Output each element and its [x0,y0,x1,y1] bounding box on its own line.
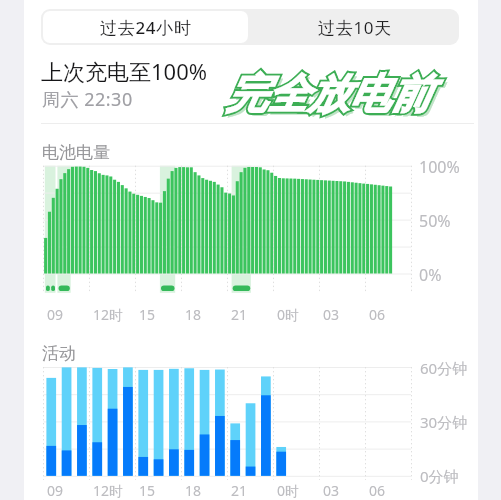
staticText: 09 [47,305,64,324]
staticText: 完全放电前 [226,69,431,121]
staticText: 周六 22:30 [42,87,133,112]
staticText: 100% [419,156,460,178]
staticText: 0时 [277,481,300,500]
staticText: 03 [323,481,340,500]
staticText: 18 [185,481,202,500]
staticText: 12时 [93,305,124,324]
staticText: 50% [419,210,451,232]
staticText: 0时 [277,305,300,324]
staticText: 15 [139,481,156,500]
staticText: 过去10天 [318,16,392,39]
staticText: 21 [231,481,248,500]
staticText: 0% [419,264,442,286]
staticText: 过去24小时 [100,16,192,39]
staticText: 12时 [93,481,124,500]
staticText: 09 [47,481,64,500]
button[interactable]: 过去10天 [250,9,459,45]
staticText: 03 [323,305,340,324]
staticText: 30分钟 [420,412,468,432]
staticText: 18 [185,305,202,324]
staticText: 上次充电至100% [41,56,208,86]
staticText: 60分钟 [420,358,468,378]
staticText: 15 [139,305,156,324]
staticText: 活动 [42,343,76,364]
staticText: 21 [231,305,248,324]
staticText: 0分钟 [420,466,459,486]
staticText: 完全放电前 [229,72,434,124]
staticText: 06 [369,305,386,324]
staticText: 完全放电前 [226,69,431,121]
staticText: 06 [369,481,386,500]
staticText: 电池电量 [42,142,110,163]
button[interactable]: 过去24小时 [41,9,250,45]
